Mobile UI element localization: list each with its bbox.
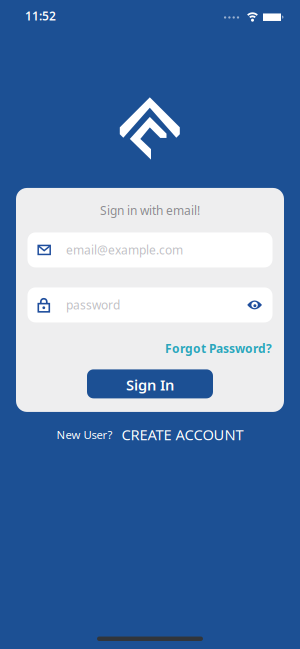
button[interactable]: password bbox=[27, 287, 272, 322]
button[interactable] bbox=[247, 299, 262, 310]
staticText: New User? bbox=[56, 427, 112, 442]
staticText: password bbox=[66, 297, 120, 313]
staticText: Forgot Password? bbox=[165, 340, 272, 356]
staticText: Sign In bbox=[126, 375, 174, 395]
staticText: CREATE ACCOUNT bbox=[121, 425, 243, 444]
staticText: Sign in with email! bbox=[100, 202, 200, 218]
button[interactable]: Sign In bbox=[87, 369, 213, 398]
staticText: email@example.com bbox=[66, 242, 183, 258]
button[interactable]: CREATE ACCOUNT bbox=[121, 425, 243, 444]
button[interactable]: email@example.com bbox=[27, 232, 272, 267]
staticText: 11:52 bbox=[25, 8, 56, 24]
button[interactable]: Forgot Password? bbox=[165, 340, 272, 356]
